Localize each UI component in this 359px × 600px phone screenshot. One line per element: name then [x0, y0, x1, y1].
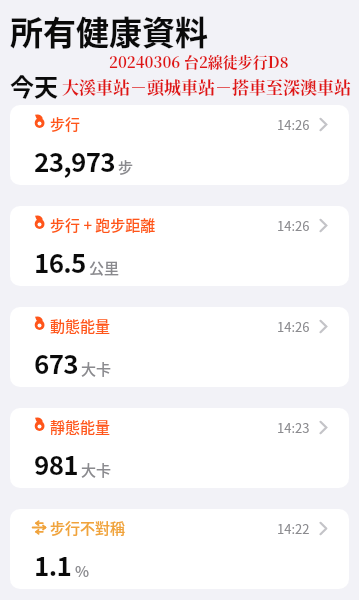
staticText: 今天	[10, 68, 58, 103]
button[interactable]: 步行 + 跑步距離	[10, 206, 349, 286]
staticText: 16.5	[34, 243, 86, 281]
staticText: 步	[118, 156, 134, 178]
staticText: 公里	[89, 257, 120, 279]
button[interactable]: 動態能量	[10, 307, 349, 387]
staticText: 14:23	[277, 418, 310, 437]
button[interactable]: 靜態能量	[10, 408, 349, 488]
staticText: 大卡	[81, 358, 112, 380]
staticText: %	[75, 560, 90, 582]
button[interactable]: 步行	[10, 105, 349, 185]
staticText: 1.1	[34, 546, 72, 584]
staticText: 673	[34, 344, 78, 382]
staticText: 大溪車站－頭城車站－搭車至深澳車站	[62, 74, 351, 98]
staticText: 14:22	[277, 519, 310, 538]
staticText: 981	[34, 445, 78, 483]
staticText: 靜態能量	[50, 416, 111, 438]
staticText: 23,973	[34, 142, 115, 180]
staticText: 所有健康資料	[10, 7, 208, 55]
button[interactable]: 步行不對稱	[10, 509, 349, 589]
staticText: 20240306 台2線徒步行D8	[109, 51, 289, 73]
staticText: 步行不對稱	[50, 517, 126, 539]
staticText: 步行 + 跑步距離	[50, 214, 156, 236]
staticText: 步行	[50, 113, 81, 135]
staticText: 14:26	[277, 216, 310, 235]
staticText: 大卡	[81, 459, 112, 481]
staticText: 14:26	[277, 115, 310, 134]
staticText: 14:26	[277, 317, 310, 336]
staticText: 動態能量	[50, 315, 111, 337]
